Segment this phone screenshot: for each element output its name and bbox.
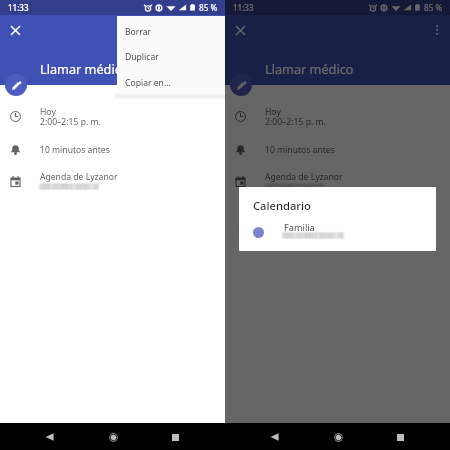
button[interactable]: Hoy <box>225 100 450 129</box>
button[interactable]: Hoy <box>0 100 225 129</box>
staticText: Hoy <box>40 106 56 118</box>
button[interactable]: Home <box>326 425 350 449</box>
button[interactable]: Borrar <box>117 19 225 44</box>
staticText: Copiar en... <box>125 77 171 89</box>
button[interactable]: Recents <box>163 425 187 449</box>
staticText: Agenda de Lyzanor <box>265 171 343 183</box>
button[interactable]: Copiar en... <box>117 70 225 95</box>
button[interactable]: 10 minutos antes <box>0 138 225 161</box>
staticText: 11:33 <box>8 2 29 13</box>
button[interactable]: Agenda de Lyzanor <box>0 167 225 195</box>
staticText: Familia <box>284 221 315 234</box>
staticText: 10 minutos antes <box>40 144 110 156</box>
staticText: Agenda de Lyzanor <box>40 171 118 183</box>
staticText: 10 minutos antes <box>265 144 335 156</box>
staticText: 2:00–2:15 p. m. <box>265 116 326 128</box>
button[interactable]: Home <box>101 425 125 449</box>
staticText: Borrar <box>125 26 152 38</box>
button[interactable]: Edit <box>5 74 27 96</box>
staticText: 2:00–2:15 p. m. <box>40 116 101 128</box>
staticText: Duplicar <box>125 51 159 63</box>
button[interactable] <box>239 219 436 245</box>
staticText: Llamar médico <box>265 60 354 77</box>
staticText: Hoy <box>265 106 281 118</box>
staticText: Calendario <box>253 198 311 213</box>
button[interactable]: Recents <box>388 425 412 449</box>
staticText: 11:33 <box>233 2 254 13</box>
button[interactable]: Close <box>228 18 252 42</box>
button[interactable]: More options <box>425 18 449 42</box>
button[interactable]: Agenda de Lyzanor <box>225 167 450 195</box>
button[interactable]: Back <box>263 425 287 449</box>
button[interactable]: Back <box>38 425 62 449</box>
button[interactable]: Close <box>3 18 27 42</box>
button[interactable]: Edit <box>230 74 252 96</box>
staticText: Llamar médico <box>40 60 129 77</box>
staticText: 85 % <box>199 2 218 13</box>
button[interactable]: 10 minutos antes <box>225 138 450 161</box>
button[interactable]: Duplicar <box>117 44 225 69</box>
staticText: 85 % <box>424 2 443 13</box>
